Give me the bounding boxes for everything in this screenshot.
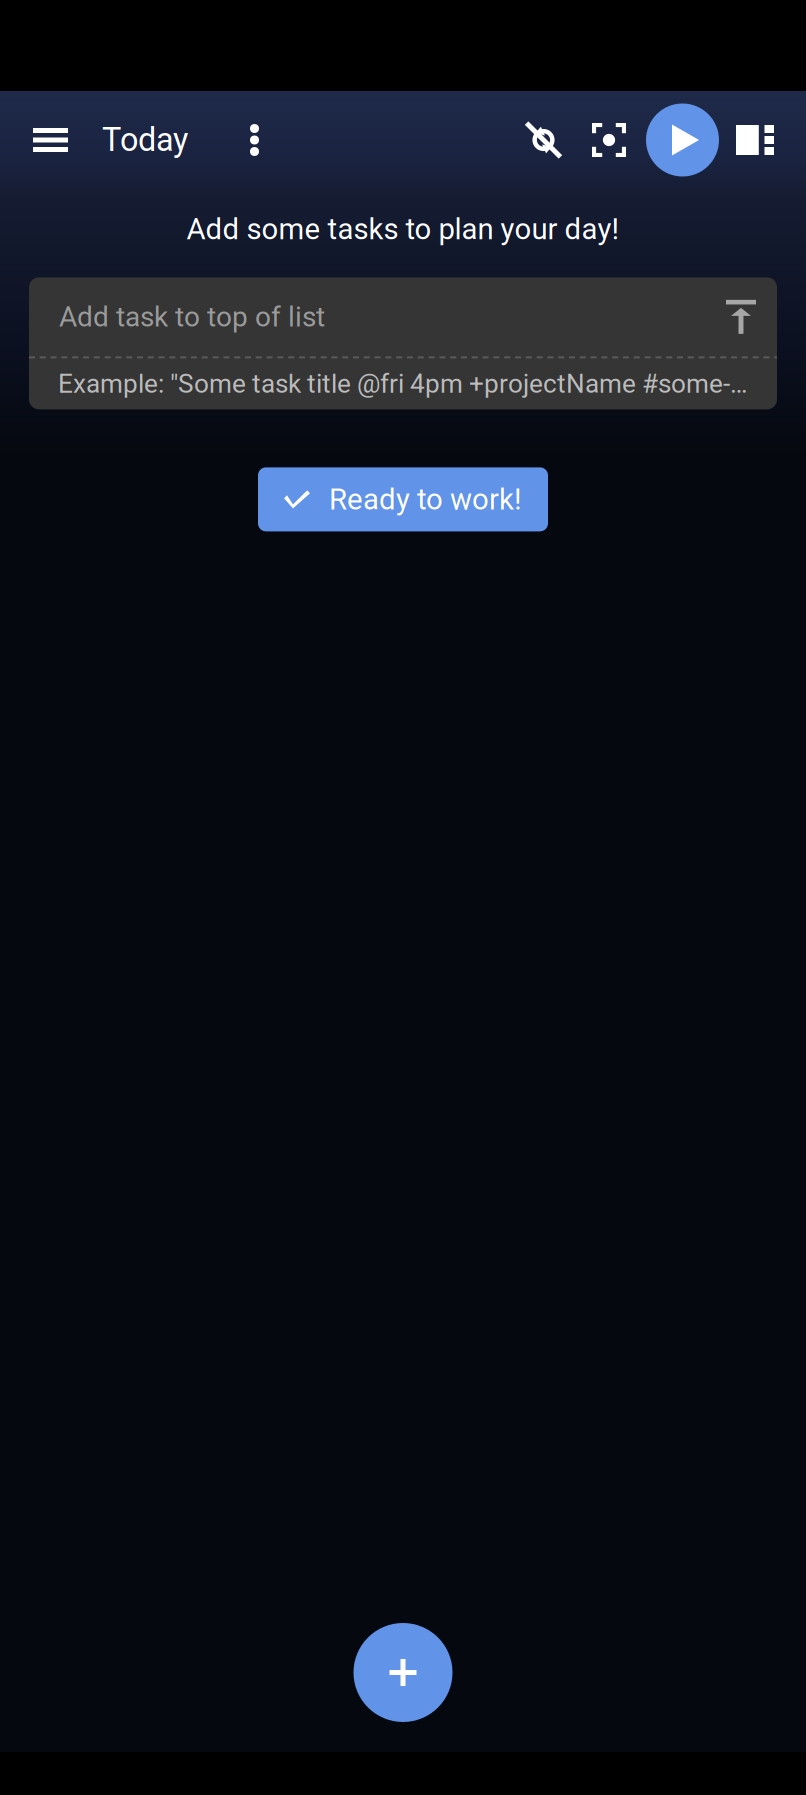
staticText: Add some tasks to plan your day! [186, 212, 619, 246]
button[interactable]: More options [188, 91, 279, 189]
button[interactable]: Change layout [719, 91, 806, 189]
button[interactable]: Menu [0, 91, 102, 189]
button[interactable]: Focus mode [581, 91, 646, 189]
button[interactable]: Ready to work! [258, 467, 548, 531]
button[interactable]: Start timer [646, 91, 719, 189]
button[interactable]: Sync disabled [505, 91, 581, 189]
staticText: Example: "Some task title @fri 4pm +proj… [58, 369, 747, 399]
staticText: Ready to work! [329, 482, 522, 517]
button[interactable]: Add task [353, 1623, 452, 1722]
staticText: Add task to top of list [59, 300, 325, 333]
button[interactable]: Today [102, 91, 188, 189]
staticText: Today [102, 121, 188, 159]
